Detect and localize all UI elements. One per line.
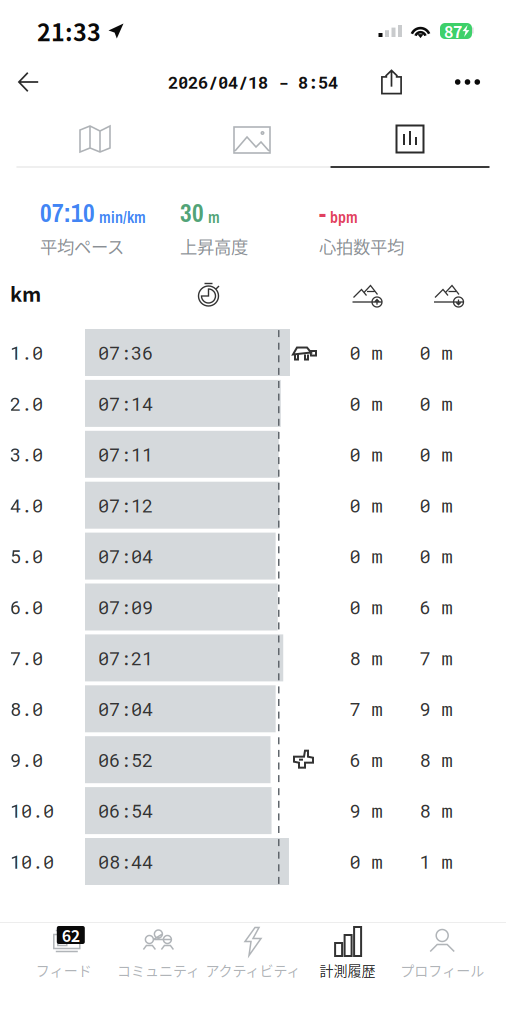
staticText: 8 m bbox=[419, 747, 452, 772]
button[interactable]: コミュニティ bbox=[111, 925, 206, 979]
staticText: 06:52 bbox=[98, 747, 153, 772]
staticText: 7 m bbox=[349, 696, 382, 721]
staticText: 07:11 bbox=[98, 442, 153, 467]
button[interactable]: Photos bbox=[173, 112, 330, 166]
staticText: 6 m bbox=[349, 747, 382, 772]
staticText: 07:21 bbox=[98, 646, 153, 670]
staticText: 1 m bbox=[419, 849, 452, 874]
staticText: 9.0 bbox=[10, 747, 43, 772]
staticText: bpm bbox=[330, 206, 358, 228]
staticText: 0 m bbox=[349, 544, 382, 568]
button[interactable]: アクティビティ bbox=[206, 925, 300, 979]
staticText: 2.0 bbox=[10, 391, 43, 416]
staticText: 07:10 bbox=[40, 196, 95, 230]
staticText: km bbox=[10, 278, 41, 307]
staticText: 07:12 bbox=[98, 493, 153, 517]
staticText: 9 m bbox=[349, 798, 382, 823]
staticText: 0 m bbox=[349, 595, 382, 619]
staticText: 08:44 bbox=[98, 849, 153, 874]
button[interactable]: プロフィール bbox=[395, 925, 489, 979]
staticText: 21:33 bbox=[37, 14, 101, 48]
staticText: 計測履歴 bbox=[320, 960, 376, 980]
staticText: 0 m bbox=[349, 340, 382, 365]
staticText: 0 m bbox=[349, 493, 382, 517]
button[interactable]: Map bbox=[16, 112, 173, 166]
staticText: プロフィール bbox=[400, 960, 484, 980]
staticText: 0 m bbox=[419, 493, 452, 517]
staticText: アクティビティ bbox=[205, 960, 300, 980]
staticText: 7 m bbox=[419, 646, 452, 670]
staticText: 心拍数平均 bbox=[319, 233, 404, 259]
button[interactable]: 計測履歴 bbox=[300, 925, 395, 979]
staticText: 10.0 bbox=[10, 798, 54, 823]
staticText: コミュニティ bbox=[117, 960, 200, 980]
staticText: 8 m bbox=[419, 798, 452, 823]
staticText: 0 m bbox=[419, 442, 452, 467]
button[interactable]: Back bbox=[0, 56, 53, 108]
staticText: - bbox=[319, 196, 326, 230]
staticText: 3.0 bbox=[10, 442, 43, 467]
button[interactable]: Splits bbox=[330, 112, 489, 166]
staticText: 07:04 bbox=[98, 696, 153, 721]
staticText: 87 bbox=[444, 19, 462, 43]
staticText: 62 bbox=[62, 923, 80, 947]
staticText: 07:09 bbox=[98, 595, 153, 619]
staticText: 06:54 bbox=[98, 798, 153, 823]
staticText: フィード bbox=[36, 960, 92, 980]
button[interactable]: Share bbox=[367, 56, 443, 108]
staticText: 2026/04/18 - 8:54 bbox=[168, 71, 338, 93]
staticText: 8.0 bbox=[10, 696, 43, 721]
staticText: 平均ペース bbox=[40, 233, 124, 259]
staticText: 5.0 bbox=[10, 544, 43, 568]
staticText: 0 m bbox=[419, 391, 452, 416]
staticText: 上昇高度 bbox=[180, 233, 248, 259]
staticText: 7.0 bbox=[10, 646, 43, 670]
staticText: 30 bbox=[180, 196, 204, 230]
staticText: 0 m bbox=[349, 391, 382, 416]
staticText: 0 m bbox=[349, 442, 382, 467]
staticText: 8 m bbox=[349, 646, 382, 670]
button[interactable]: 62 bbox=[16, 925, 111, 979]
staticText: 6.0 bbox=[10, 595, 43, 619]
staticText: 10.0 bbox=[10, 849, 54, 874]
staticText: 07:14 bbox=[98, 391, 153, 416]
staticText: 0 m bbox=[419, 544, 452, 568]
button[interactable]: More bbox=[443, 56, 506, 108]
staticText: m bbox=[208, 206, 220, 228]
staticText: 1.0 bbox=[10, 340, 43, 365]
staticText: 9 m bbox=[419, 696, 452, 721]
staticText: 0 m bbox=[349, 849, 382, 874]
staticText: 6 m bbox=[419, 595, 452, 619]
staticText: 07:36 bbox=[98, 340, 153, 365]
staticText: 0 m bbox=[419, 340, 452, 365]
staticText: min/km bbox=[99, 206, 146, 228]
staticText: 4.0 bbox=[10, 493, 43, 517]
staticText: 07:04 bbox=[98, 544, 153, 568]
